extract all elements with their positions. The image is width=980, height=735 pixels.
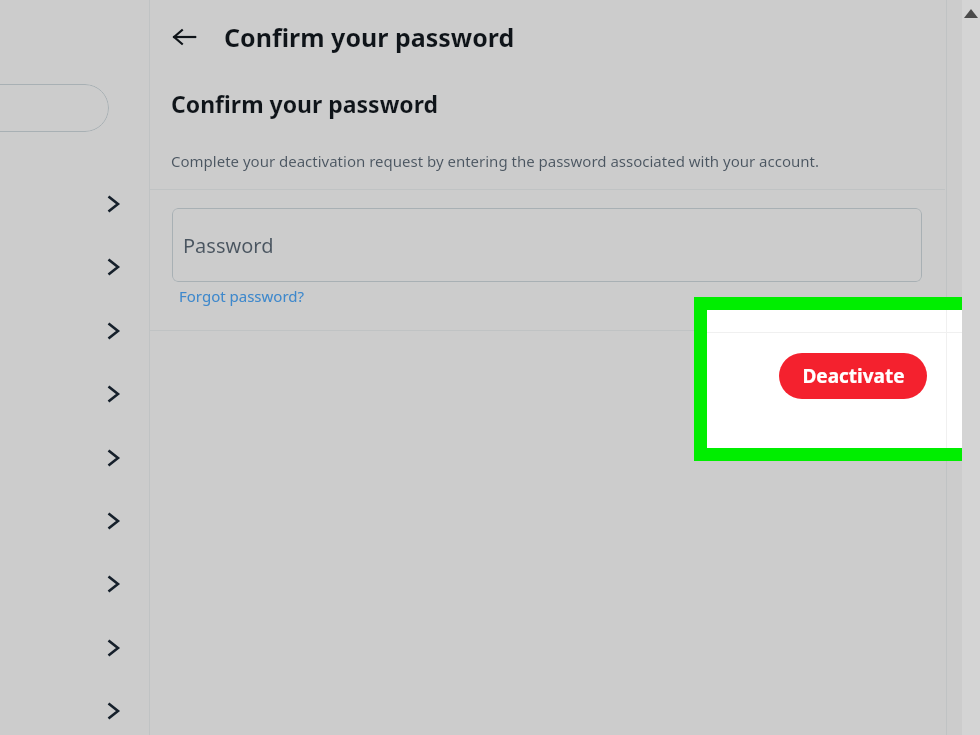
button[interactable]: Settings item bbox=[0, 362, 149, 425]
button[interactable]: Password bbox=[172, 208, 922, 282]
button[interactable]: Settings item bbox=[0, 616, 149, 679]
staticText: Confirm your password bbox=[224, 20, 515, 54]
staticText: Complete your deactivation request by en… bbox=[171, 151, 819, 171]
staticText: Forgot password? bbox=[179, 286, 305, 306]
button[interactable]: Settings item bbox=[0, 426, 149, 489]
button[interactable]: Settings item bbox=[0, 489, 149, 552]
button[interactable]: Forgot password? bbox=[179, 286, 305, 306]
staticText: Confirm your password bbox=[171, 88, 439, 119]
button[interactable]: Settings item bbox=[0, 235, 149, 298]
button[interactable]: Search bbox=[0, 84, 109, 132]
button[interactable]: Deactivate bbox=[779, 353, 927, 399]
button[interactable]: Settings item bbox=[0, 299, 149, 362]
staticText: Deactivate bbox=[802, 363, 905, 389]
staticText: Password bbox=[183, 232, 274, 259]
button[interactable]: Back bbox=[158, 11, 210, 63]
button[interactable]: Settings item bbox=[0, 172, 149, 235]
button[interactable]: Settings item bbox=[0, 552, 149, 615]
button[interactable]: Settings item bbox=[0, 679, 149, 735]
